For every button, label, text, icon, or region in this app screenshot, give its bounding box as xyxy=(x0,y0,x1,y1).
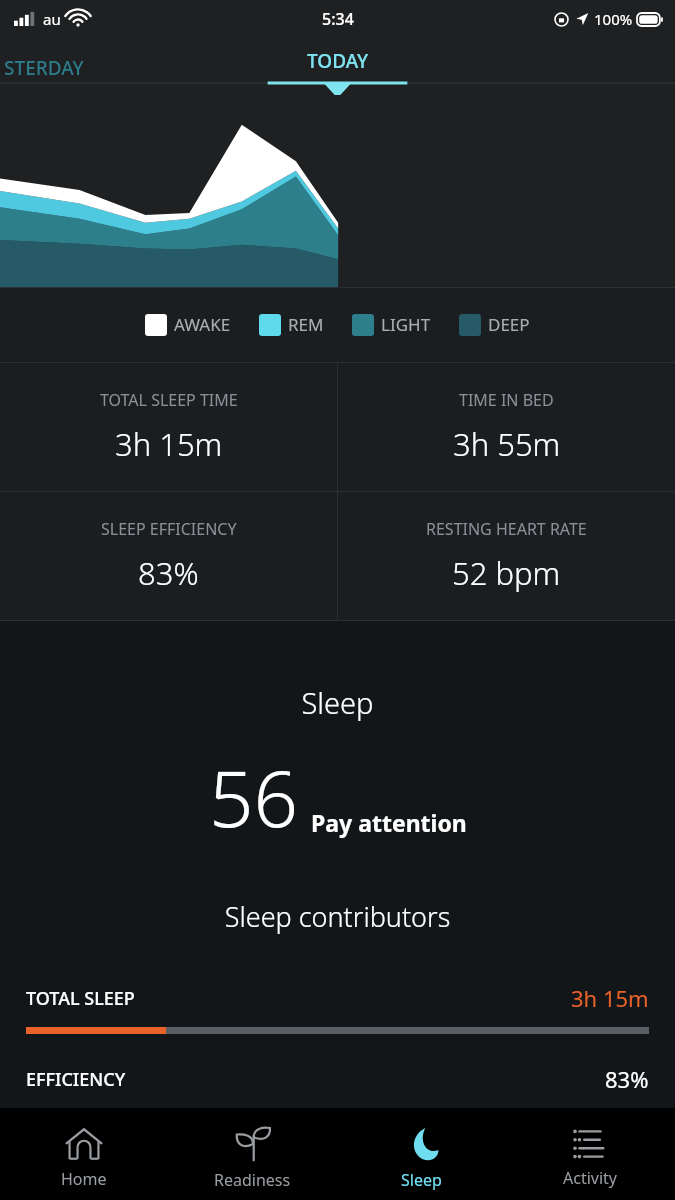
button[interactable]: RESTING HEART RATE xyxy=(338,492,675,620)
button[interactable]: EFFICIENCY xyxy=(26,1064,649,1094)
button[interactable]: TODAY xyxy=(248,38,428,95)
button[interactable]: TIME IN BED xyxy=(338,363,675,491)
staticText: Sleep xyxy=(401,1169,442,1191)
staticText: REM xyxy=(288,313,324,336)
button[interactable]: TOTAL SLEEP TIME xyxy=(0,363,337,491)
button[interactable]: Sleep xyxy=(337,1108,506,1200)
staticText: RESTING HEART RATE xyxy=(426,518,587,540)
staticText: Activity xyxy=(563,1167,618,1189)
staticText: TODAY xyxy=(307,48,369,74)
staticText: 56 xyxy=(209,744,299,850)
staticText: Home xyxy=(61,1168,107,1190)
button[interactable]: Home xyxy=(0,1108,168,1200)
button[interactable]: SLEEP EFFICIENCY xyxy=(0,492,337,620)
staticText: au xyxy=(43,9,61,29)
staticText: Sleep xyxy=(0,683,675,722)
staticText: Sleep contributors xyxy=(0,898,675,935)
staticText: DEEP xyxy=(488,313,530,336)
staticText: 52 bpm xyxy=(452,552,561,594)
staticText: 3h 15m xyxy=(571,983,649,1013)
button[interactable]: Readiness xyxy=(168,1108,337,1200)
staticText: 83% xyxy=(605,1064,649,1094)
button[interactable]: STERDAY xyxy=(0,53,84,81)
staticText: TIME IN BED xyxy=(459,389,554,411)
button[interactable]: Activity xyxy=(506,1108,675,1200)
staticText: EFFICIENCY xyxy=(26,1067,126,1092)
staticText: Readiness xyxy=(214,1169,291,1191)
staticText: 3h 55m xyxy=(453,423,561,465)
staticText: 3h 15m xyxy=(115,423,223,465)
staticText: 100% xyxy=(594,9,633,29)
staticText: TOTAL SLEEP xyxy=(26,986,135,1011)
staticText: LIGHT xyxy=(381,313,431,336)
staticText: TOTAL SLEEP TIME xyxy=(100,389,238,411)
staticText: 5:34 xyxy=(322,8,354,30)
staticText: AWAKE xyxy=(174,313,231,336)
staticText: SLEEP EFFICIENCY xyxy=(101,518,237,540)
button[interactable]: TOTAL SLEEP xyxy=(0,983,675,1034)
staticText: 83% xyxy=(138,552,199,594)
staticText: Pay attention xyxy=(311,807,467,838)
